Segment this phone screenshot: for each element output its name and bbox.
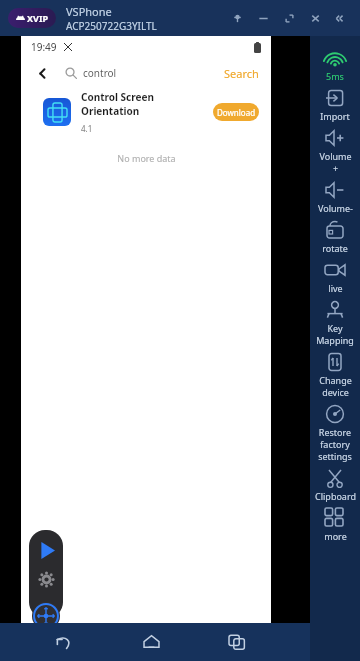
- button[interactable]: Volume-: [310, 174, 360, 214]
- button[interactable]: Restore factory settings: [310, 398, 360, 462]
- button[interactable]: Import: [310, 82, 360, 122]
- button[interactable]: Play: [34, 538, 58, 562]
- staticText: Search: [224, 66, 259, 81]
- button[interactable]: Change device: [310, 346, 360, 398]
- button[interactable]: Pin: [224, 5, 250, 31]
- button[interactable]: Recents: [194, 623, 280, 661]
- staticText: Volume-: [318, 202, 353, 214]
- button[interactable]: Back: [29, 60, 55, 86]
- button[interactable]: Control Screen Orientation: [21, 88, 271, 136]
- staticText: 19:49: [31, 40, 57, 54]
- button[interactable]: Settings: [35, 568, 57, 590]
- staticText: live: [328, 282, 343, 294]
- button[interactable]: Minimize: [250, 5, 276, 31]
- staticText: Volume +: [319, 150, 352, 174]
- staticText: more: [324, 530, 347, 542]
- button[interactable]: rotate: [310, 214, 360, 254]
- button[interactable]: Collapse: [328, 5, 354, 31]
- button[interactable]: Home: [108, 623, 194, 661]
- button[interactable]: XVIP: [8, 8, 56, 28]
- button[interactable]: more: [310, 502, 360, 542]
- button[interactable]: Close: [302, 5, 328, 31]
- staticText: Restore factory settings: [318, 426, 352, 462]
- button[interactable]: Clipboard: [310, 462, 360, 502]
- staticText: VSPhone: [66, 4, 112, 19]
- button[interactable]: Key Mapping: [310, 294, 360, 346]
- staticText: control: [83, 66, 117, 80]
- staticText: Clipboard: [315, 490, 356, 502]
- staticText: Import: [320, 110, 350, 122]
- button[interactable]: Volume +: [310, 122, 360, 174]
- staticText: Key Mapping: [316, 322, 354, 346]
- button[interactable]: Back: [21, 623, 108, 661]
- button[interactable]: Download: [213, 103, 259, 121]
- staticText: No more data: [117, 152, 176, 164]
- staticText: ACP250722G3YILTL: [66, 19, 157, 33]
- button[interactable]: Network: [310, 48, 360, 82]
- button[interactable]: Move: [32, 602, 60, 630]
- staticText: XVIP: [27, 12, 48, 24]
- button[interactable]: live: [310, 254, 360, 294]
- button[interactable]: Maximize: [276, 5, 302, 31]
- staticText: 4.1: [81, 123, 93, 134]
- staticText: rotate: [322, 242, 348, 254]
- staticText: Control Screen Orientation: [81, 90, 213, 118]
- button[interactable]: Search: [220, 62, 263, 85]
- staticText: 5ms: [326, 70, 344, 82]
- button[interactable]: control: [65, 66, 220, 80]
- staticText: Change device: [319, 374, 352, 398]
- staticText: Download: [217, 107, 256, 118]
